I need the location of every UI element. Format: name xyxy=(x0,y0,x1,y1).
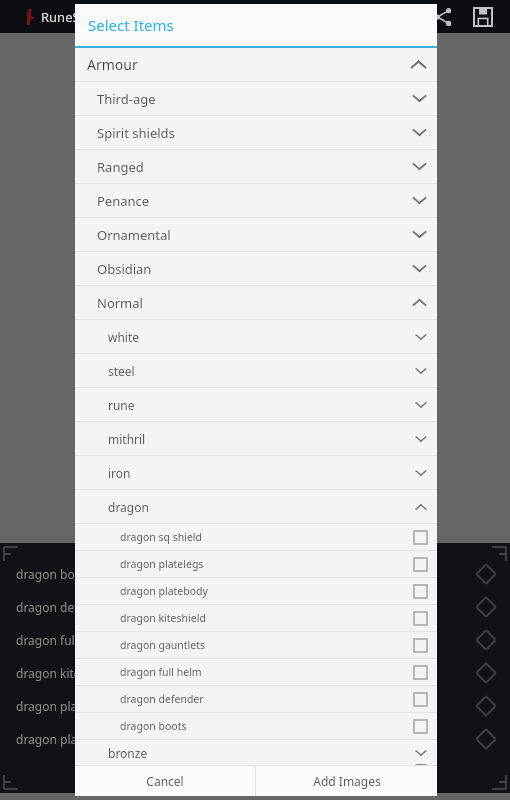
button[interactable]: dragon sq shield xyxy=(75,524,437,550)
staticText: dragon kiteshield xyxy=(120,611,206,625)
staticText: dragon boots xyxy=(16,566,92,582)
staticText: Obsidian xyxy=(97,260,152,278)
staticText: Third-age xyxy=(97,90,156,108)
staticText: rune xyxy=(108,397,135,413)
button[interactable]: Armour xyxy=(75,48,437,81)
button[interactable]: Save xyxy=(466,0,500,33)
staticText: dragon platebody xyxy=(120,584,208,598)
staticText: Normal xyxy=(97,294,143,312)
staticText: dragon xyxy=(108,499,149,515)
staticText: dragon full helm xyxy=(16,632,110,648)
button[interactable]: dragon platebody xyxy=(0,689,225,722)
button[interactable]: rune xyxy=(75,388,437,421)
button[interactable]: steel xyxy=(75,354,437,387)
staticText: white xyxy=(108,329,140,345)
button[interactable]: iron xyxy=(75,456,437,489)
button[interactable]: Item icon xyxy=(462,557,510,590)
button[interactable]: dragon platelegs xyxy=(75,551,437,577)
button[interactable]: Penance xyxy=(75,184,437,217)
staticText: Armour xyxy=(87,55,138,74)
button[interactable]: Ornamental xyxy=(75,218,437,251)
button[interactable]: Share xyxy=(426,0,460,33)
button[interactable]: dragon kiteshield xyxy=(0,656,225,689)
button[interactable]: dragon defender xyxy=(0,590,225,623)
button[interactable]: Item icon xyxy=(462,656,510,689)
button[interactable]: dragon kiteshield xyxy=(75,605,437,631)
button[interactable]: Item icon xyxy=(462,590,510,623)
staticText: mithril xyxy=(108,431,146,447)
staticText: dragon defender xyxy=(16,599,112,615)
button[interactable]: white xyxy=(75,320,437,353)
staticText: bronze xyxy=(108,745,148,761)
button[interactable]: dragon xyxy=(75,490,437,523)
staticText: dragon defender xyxy=(120,692,204,706)
button[interactable]: dragon platebody xyxy=(75,578,437,604)
button[interactable]: Add Images xyxy=(256,766,437,796)
staticText: dragon platebody xyxy=(16,698,117,714)
staticText: dragon sq shield xyxy=(120,530,203,544)
button[interactable]: dragon boots xyxy=(0,557,225,590)
staticText: Ornamental xyxy=(97,226,171,244)
button[interactable]: Ranged xyxy=(75,150,437,183)
button[interactable]: dragon platelegs xyxy=(0,722,225,755)
button[interactable]: dragon defender xyxy=(75,686,437,712)
staticText: steel xyxy=(108,363,135,379)
staticText: Penance xyxy=(97,192,150,210)
button[interactable]: Item icon xyxy=(462,623,510,656)
staticText: dragon gauntlets xyxy=(120,638,206,652)
button[interactable]: Item icon xyxy=(462,689,510,722)
staticText: dragon platelegs xyxy=(16,731,112,747)
staticText: dragon full helm xyxy=(120,665,202,679)
button[interactable]: Cancel xyxy=(75,766,255,796)
staticText: Add Images xyxy=(313,773,381,789)
staticText: dragon boots xyxy=(120,719,187,733)
button[interactable]: mithril xyxy=(75,422,437,455)
staticText: dragon platelegs xyxy=(120,557,204,571)
button[interactable]: dragon full helm xyxy=(75,659,437,685)
button[interactable]: Item icon xyxy=(462,722,510,755)
staticText: Spirit shields xyxy=(97,124,175,142)
staticText: Select Items xyxy=(88,15,174,35)
staticText: dragon kiteshield xyxy=(16,665,115,681)
button[interactable]: bronze xyxy=(75,740,437,765)
staticText: RuneScape Tools xyxy=(41,8,144,26)
button[interactable]: dragon full helm xyxy=(0,623,225,656)
staticText: Cancel xyxy=(146,773,184,789)
button[interactable]: Third-age xyxy=(75,82,437,115)
button[interactable]: Spirit shields xyxy=(75,116,437,149)
button[interactable]: dragon boots xyxy=(75,713,437,739)
button[interactable]: Obsidian xyxy=(75,252,437,285)
staticText: Ranged xyxy=(97,158,144,176)
button[interactable]: Normal xyxy=(75,286,437,319)
staticText: iron xyxy=(108,465,131,481)
button[interactable]: dragon gauntlets xyxy=(75,632,437,658)
